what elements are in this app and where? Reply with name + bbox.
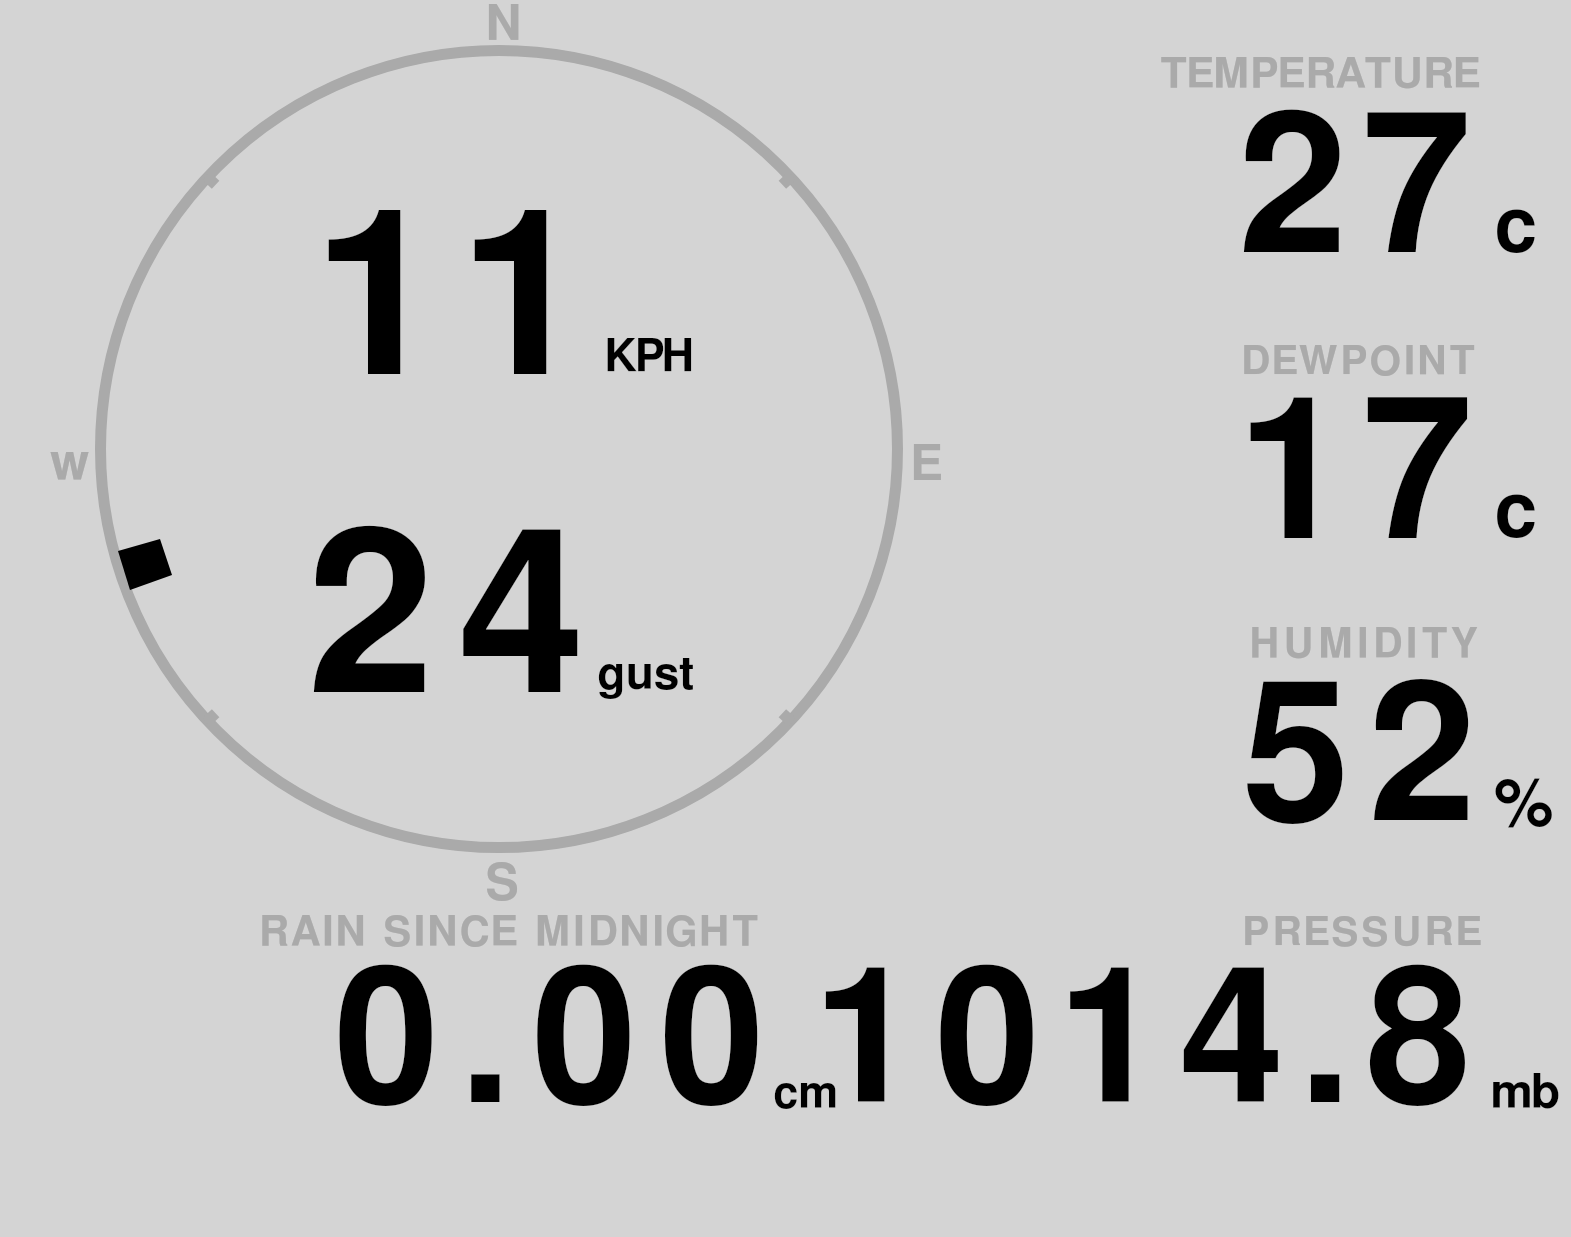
staticText: 17 — [1237, 379, 1487, 578]
button[interactable]: Temperature 27 c — [1150, 50, 1565, 260]
staticText: S — [485, 860, 520, 910]
staticText: gust — [597, 652, 695, 698]
staticText: RAIN SINCE MIDNIGHT — [259, 913, 762, 955]
staticText: 24 — [307, 509, 609, 738]
staticText: 11 — [313, 189, 605, 420]
staticText: N — [485, 0, 523, 50]
staticText: HUMIDITY — [1249, 625, 1482, 666]
staticText: w — [50, 440, 90, 490]
staticText: 27 — [1238, 94, 1486, 291]
button[interactable]: Wind 11 KPH gusting 24, west south west — [95, 50, 905, 850]
button[interactable]: Humidity 52 percent — [1150, 618, 1565, 830]
staticText: mb — [1490, 1070, 1558, 1118]
staticText: E — [910, 440, 943, 490]
staticText: c — [1494, 189, 1537, 266]
staticText: KPH — [604, 335, 693, 380]
button[interactable]: Pressure 1014.8 mb — [1150, 905, 1565, 1117]
staticText: 0.00 — [334, 951, 788, 1140]
staticText: DEWPOINT — [1241, 342, 1478, 383]
staticText: cm — [773, 1072, 839, 1117]
staticText: 1014.8 — [813, 951, 1488, 1140]
staticText: c — [1494, 474, 1537, 551]
button[interactable]: Dewpoint 17 c — [1150, 335, 1565, 545]
staticText: 52 — [1242, 665, 1495, 859]
staticText: TEMPERATURE — [1160, 54, 1482, 97]
staticText: % — [1494, 772, 1554, 839]
button[interactable]: Rain since midnight 0.00 cm — [250, 905, 850, 1117]
staticText: PRESSURE — [1242, 913, 1486, 954]
